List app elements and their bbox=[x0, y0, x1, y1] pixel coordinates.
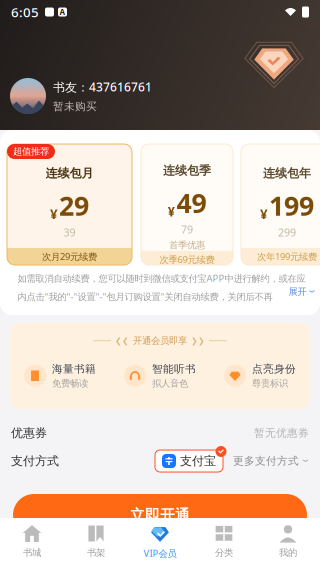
staticText: 更多支付方式 bbox=[233, 454, 299, 467]
button[interactable]: 书架 bbox=[64, 518, 128, 569]
staticText: 49 bbox=[176, 185, 206, 220]
button[interactable]: VIP会员 bbox=[128, 518, 192, 569]
button[interactable]: 优惠券 bbox=[0, 420, 320, 446]
staticText: 我的 bbox=[279, 547, 297, 558]
staticText: 199 bbox=[269, 188, 314, 223]
staticText: 内点击"我的"-"设置"-"包月订购设置"关闭自动续费，关闭后不再 bbox=[17, 290, 272, 303]
staticText: 首季优惠 bbox=[169, 239, 205, 251]
staticText: ¥ bbox=[260, 205, 268, 223]
staticText: 连续包年 bbox=[263, 166, 311, 181]
staticText: 如需取消自动续费，您可以随时到微信或支付宝APP中进行解约，或在应 bbox=[17, 272, 305, 284]
staticText: ¥ bbox=[167, 203, 175, 220]
button[interactable]: 支付宝 bbox=[155, 450, 223, 472]
staticText: 海量书籍 bbox=[52, 362, 96, 376]
staticText: 书架 bbox=[87, 547, 105, 558]
button[interactable]: 连续包季 bbox=[141, 144, 233, 265]
staticText: 次月29元续费 bbox=[42, 250, 97, 263]
staticText: 暂无优惠券 bbox=[254, 426, 309, 439]
staticText: 暂未购买 bbox=[53, 100, 97, 113]
staticText: 连续包季 bbox=[163, 163, 211, 178]
button[interactable]: 书城 bbox=[0, 518, 64, 569]
button[interactable]: 立即开通 bbox=[13, 494, 307, 536]
button[interactable]: 更多支付方式 bbox=[233, 454, 309, 467]
staticText: 智能听书 bbox=[152, 362, 196, 376]
button[interactable]: 连续包月 bbox=[7, 144, 132, 265]
staticText: 39 bbox=[63, 225, 75, 239]
staticText: 书城 bbox=[23, 547, 41, 558]
staticText: VIP会员 bbox=[143, 547, 176, 559]
button[interactable]: 分类 bbox=[192, 518, 256, 569]
staticText: 29 bbox=[59, 188, 89, 223]
staticText: 开通会员即享 bbox=[133, 335, 187, 346]
staticText: 立即开通 bbox=[130, 506, 190, 524]
staticText: 次季69元续费 bbox=[159, 253, 214, 266]
staticText: 点亮身份 bbox=[252, 362, 296, 376]
staticText: ¥ bbox=[50, 205, 58, 223]
staticText: 超值推荐 bbox=[13, 146, 49, 157]
staticText: 6:05 bbox=[11, 3, 39, 21]
staticText: 连续包月 bbox=[45, 166, 93, 181]
staticText: 优惠券 bbox=[11, 426, 47, 440]
staticText: 次年199元续费 bbox=[257, 250, 317, 263]
staticText: 79 bbox=[181, 222, 193, 236]
staticText: 分类 bbox=[215, 547, 233, 558]
staticText: A bbox=[59, 7, 65, 17]
staticText: 展开 bbox=[288, 286, 306, 297]
staticText: 免费畅读 bbox=[52, 378, 88, 389]
staticText: 支付宝 bbox=[180, 454, 216, 468]
staticText: ❯❯ bbox=[191, 336, 205, 345]
staticText: 299 bbox=[278, 225, 296, 239]
staticText: 拟人音色 bbox=[152, 378, 188, 389]
staticText: 支付方式 bbox=[11, 454, 59, 468]
button[interactable]: 连续包年 bbox=[241, 144, 320, 265]
staticText: 书友：437616761 bbox=[53, 79, 152, 95]
button[interactable]: 我的 bbox=[256, 518, 320, 569]
staticText: ❮❮ bbox=[115, 336, 129, 345]
staticText: 尊贵标识 bbox=[252, 378, 288, 389]
button[interactable]: 展开 bbox=[282, 286, 315, 297]
